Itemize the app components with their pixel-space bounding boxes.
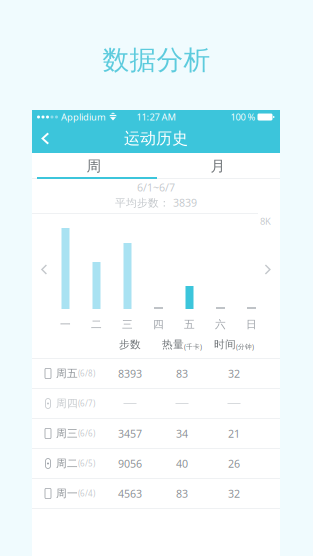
staticText: 周二 [56, 457, 78, 470]
staticText: 32 [228, 366, 240, 381]
button[interactable]: Back [32, 124, 58, 153]
staticText: (6/6) [78, 428, 95, 439]
staticText: 6/1~6/7 [137, 180, 175, 194]
button[interactable]: 周五 [32, 358, 280, 388]
button[interactable]: 月 [156, 153, 280, 179]
button[interactable]: 周二 [32, 448, 280, 478]
button[interactable]: 周一 [32, 478, 280, 508]
staticText: 83 [176, 486, 188, 501]
button[interactable]: 周三 [32, 418, 280, 448]
staticText: 4563 [118, 486, 142, 501]
staticText: 100 % [230, 111, 255, 123]
staticText: 平均步数： 3839 [115, 195, 197, 210]
staticText: 8393 [118, 366, 142, 381]
staticText: (千卡) [184, 342, 202, 351]
staticText: 周一 [56, 487, 78, 500]
staticText: Applidium [61, 111, 106, 123]
staticText: 11:27 AM [136, 111, 175, 123]
staticText: 3457 [118, 426, 142, 441]
staticText: 一 [60, 318, 71, 331]
staticText: (分钟) [236, 342, 254, 351]
staticText: 步数 [119, 338, 141, 351]
staticText: 五 [184, 318, 195, 331]
staticText: 周四 [56, 397, 78, 410]
staticText: 时间 [214, 338, 236, 351]
staticText: 二 [91, 318, 102, 331]
staticText: (6/7) [78, 398, 95, 409]
button[interactable]: Next week [260, 260, 276, 280]
button[interactable]: 周 [32, 153, 156, 179]
staticText: (6/5) [78, 458, 95, 469]
staticText: 日 [246, 318, 257, 331]
staticText: 83 [176, 366, 188, 381]
staticText: 21 [228, 426, 240, 441]
staticText: 40 [176, 456, 188, 471]
staticText: 三 [122, 318, 133, 331]
staticText: 六 [215, 318, 226, 331]
button[interactable]: Previous week [36, 260, 52, 280]
staticText: 周三 [56, 427, 78, 440]
staticText: 数据分析 [102, 44, 210, 76]
staticText: 月 [210, 157, 225, 175]
staticText: 26 [228, 456, 240, 471]
button[interactable]: 周四 [32, 388, 280, 418]
staticText: 34 [176, 426, 188, 441]
staticText: 四 [153, 318, 164, 331]
staticText: 周五 [56, 367, 78, 380]
staticText: (6/8) [78, 368, 95, 379]
staticText: 8K [260, 215, 271, 227]
staticText: 32 [228, 486, 240, 501]
staticText: (6/4) [78, 488, 95, 499]
staticText: 周 [86, 157, 101, 175]
staticText: 热量 [162, 338, 184, 351]
staticText: 运动历史 [124, 129, 188, 148]
staticText: 9056 [118, 456, 142, 471]
